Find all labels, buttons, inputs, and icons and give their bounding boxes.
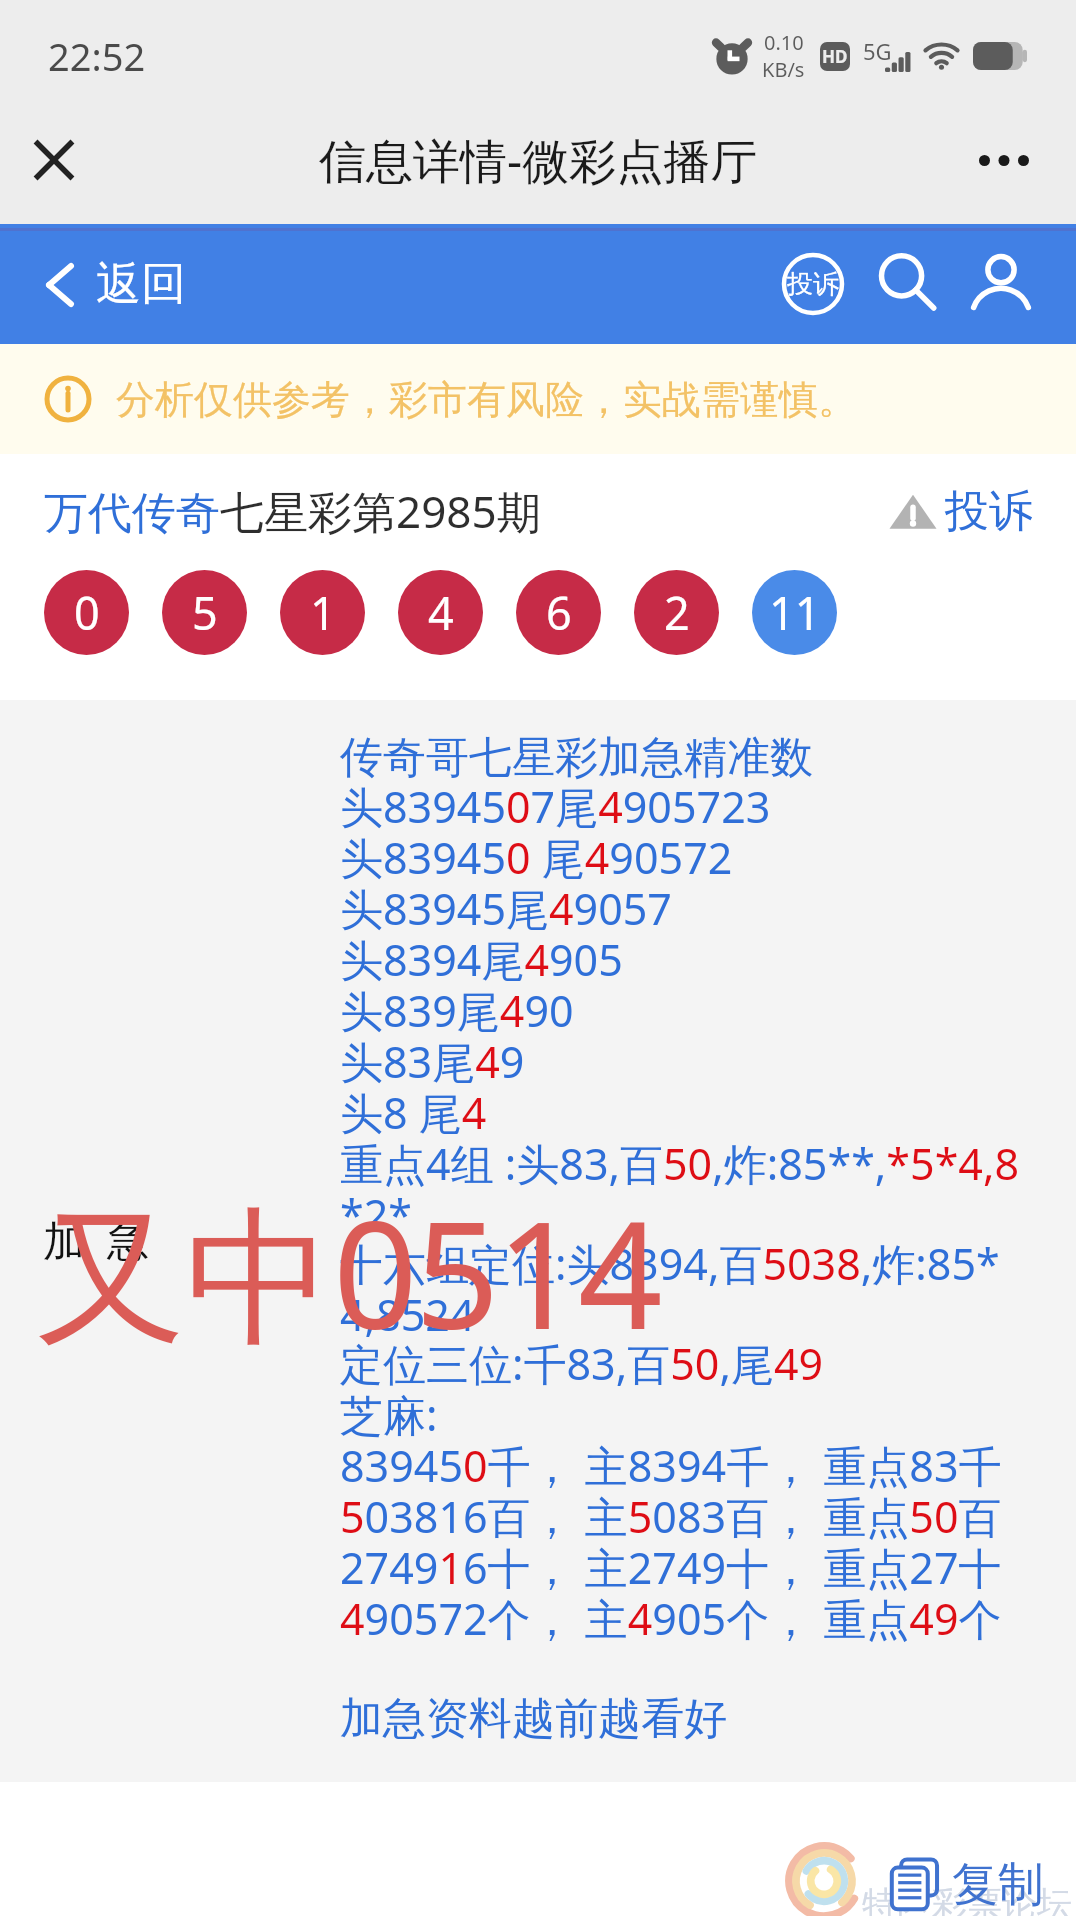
staticText: 0.10 xyxy=(764,29,804,56)
button[interactable]: 0 xyxy=(44,570,129,655)
button[interactable]: 4 xyxy=(398,570,483,655)
button[interactable]: 投诉 xyxy=(776,247,850,321)
staticText: 6 xyxy=(546,582,572,643)
button[interactable]: Account xyxy=(964,247,1038,321)
staticText: 万代传奇七星彩第2985期 xyxy=(44,481,541,541)
button[interactable]: 返回 xyxy=(46,242,186,327)
staticText: 投诉 xyxy=(945,484,1033,539)
button[interactable]: Search xyxy=(870,247,944,321)
button[interactable]: More options xyxy=(950,106,1058,214)
staticText: 5 xyxy=(192,582,218,643)
staticText: 5G xyxy=(863,36,892,66)
staticText: 又中0514 xyxy=(37,1171,660,1373)
staticText: 1 xyxy=(310,582,336,643)
button[interactable]: 11 xyxy=(752,570,837,655)
staticText: 22:52 xyxy=(48,30,146,82)
staticText: 0 xyxy=(74,582,100,643)
button[interactable]: Close xyxy=(0,106,108,214)
button[interactable]: 5 xyxy=(162,570,247,655)
staticText: 分析仅供参考，彩市有风险，实战需谨慎。 xyxy=(116,375,857,424)
staticText: HD xyxy=(822,45,848,68)
staticText: 11 xyxy=(769,582,821,643)
staticText: 投诉 xyxy=(787,268,839,301)
staticText: KB/s xyxy=(762,56,805,83)
staticText: 特区彩票论坛 xyxy=(862,1882,1072,1916)
staticText: 复制 xyxy=(952,1856,1044,1914)
button[interactable]: 复制 xyxy=(886,1856,1044,1914)
button[interactable]: 6 xyxy=(516,570,601,655)
staticText: 2 xyxy=(664,582,690,643)
staticText: 返回 xyxy=(96,256,186,313)
button[interactable]: 1 xyxy=(280,570,365,655)
staticText: 传奇哥七星彩加急精准数 头8394507尾4905723 头839450 尾49… xyxy=(340,731,1020,1746)
staticText: 加 急 xyxy=(43,1211,149,1268)
staticText: 4 xyxy=(428,582,454,643)
button[interactable]: 2 xyxy=(634,570,719,655)
staticText: 信息详情-微彩点播厅 xyxy=(319,128,758,192)
button[interactable]: 投诉 xyxy=(889,484,1033,539)
